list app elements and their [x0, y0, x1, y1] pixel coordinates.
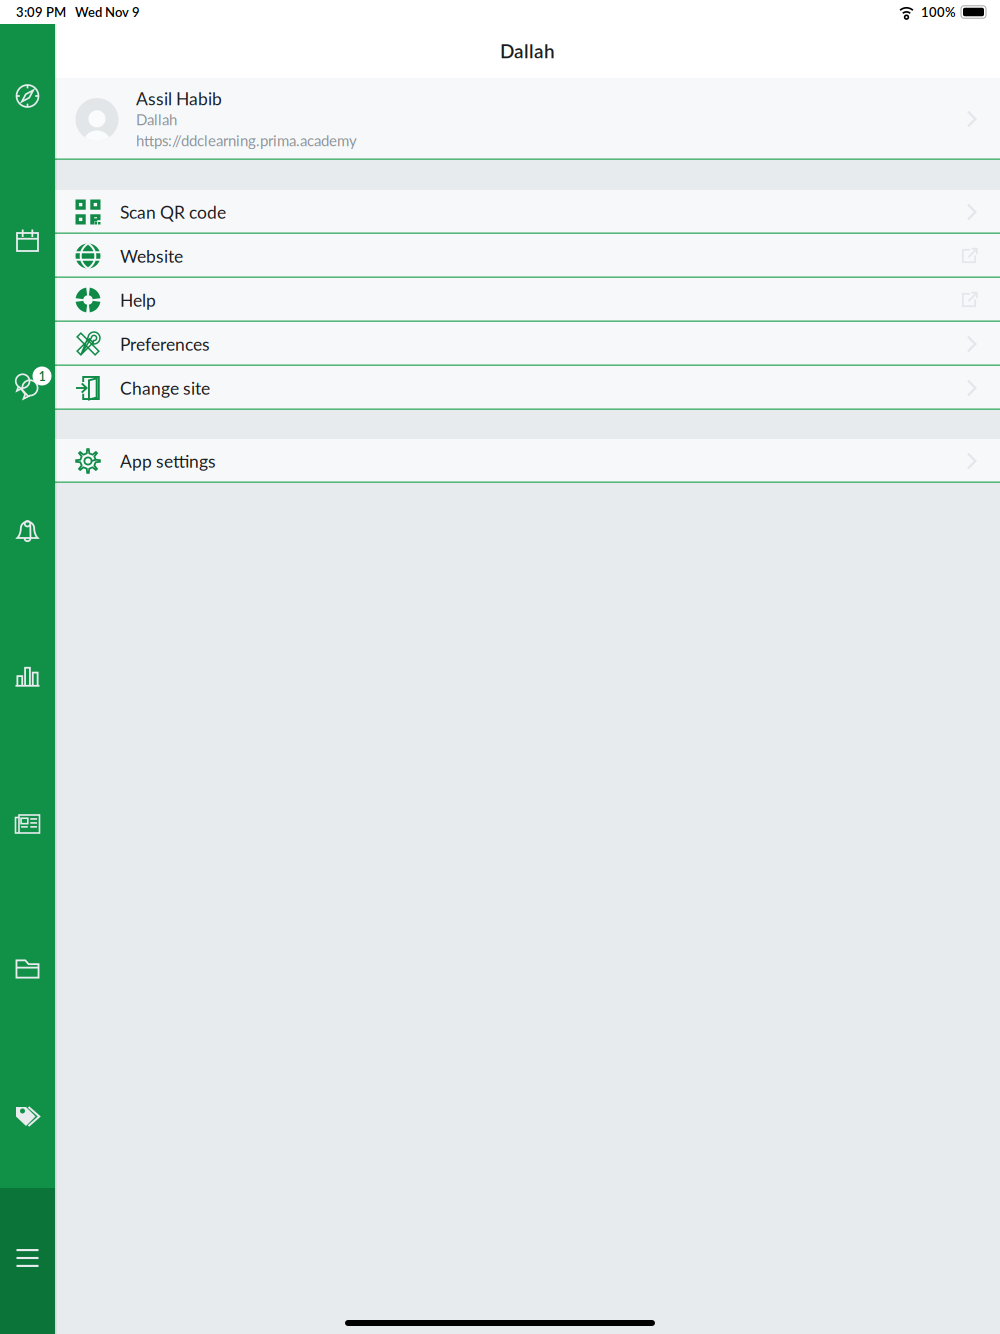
button[interactable]: Tags — [0, 1089, 55, 1141]
button[interactable]: Preferences — [55, 322, 1000, 366]
staticText: App settings — [120, 450, 216, 471]
button[interactable]: Scan QR code — [55, 190, 1000, 234]
staticText: 100% — [921, 4, 956, 20]
button[interactable]: Help — [55, 278, 1000, 322]
button[interactable]: Messages — [0, 360, 55, 412]
staticText: Dallah — [136, 110, 177, 128]
button[interactable]: Discover — [0, 70, 55, 122]
staticText: 1 — [38, 368, 45, 384]
staticText: Preferences — [120, 333, 210, 354]
staticText: 3:09 PM — [16, 4, 66, 20]
button[interactable]: Assil Habib — [55, 78, 1000, 160]
button[interactable]: Files — [0, 943, 55, 995]
staticText: Assil Habib — [136, 88, 222, 109]
staticText: Help — [120, 289, 156, 310]
staticText: Scan QR code — [120, 201, 226, 222]
button[interactable]: Notifications — [0, 506, 55, 558]
button[interactable]: Calendar — [0, 215, 55, 267]
staticText: Wed Nov 9 — [75, 4, 140, 20]
staticText: Website — [120, 245, 183, 266]
button[interactable]: News — [0, 798, 55, 850]
button[interactable]: Change site — [55, 366, 1000, 410]
button[interactable]: Statistics — [0, 651, 55, 703]
staticText: https://ddclearning.prima.academy — [136, 131, 357, 149]
staticText: Dallah — [500, 40, 555, 62]
staticText: Change site — [120, 377, 210, 398]
button[interactable]: Menu — [0, 1232, 55, 1284]
button[interactable]: App settings — [55, 439, 1000, 483]
button[interactable]: Website — [55, 234, 1000, 278]
